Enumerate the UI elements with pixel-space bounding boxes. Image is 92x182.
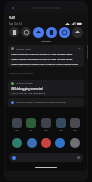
button[interactable]: Android System • Charging this device vi… [8,98,84,107]
staticText: App [29,129,33,132]
staticText: Google News [16,47,31,50]
staticText: 9:41 [9,16,16,20]
button[interactable]: App [56,118,66,128]
button[interactable]: Quick setting 2 [21,27,31,37]
button[interactable]: Android System [8,80,84,96]
staticText: Sat, Oct 14 [9,22,23,26]
button[interactable]: Dock app 4 [55,138,65,148]
button[interactable]: Quick setting 6 [72,27,83,38]
staticText: Android System [16,82,33,85]
button[interactable]: Google News [8,45,84,67]
staticText: App [59,129,63,132]
button[interactable]: App [70,118,80,128]
button[interactable] [9,153,83,162]
button[interactable]: Quick setting 5 [59,27,70,38]
button[interactable]: Quick setting 4 [46,27,57,38]
button[interactable]: Dock app 2 [27,138,37,148]
staticText: USB debugging connected [11,87,43,90]
staticText: News Nearby Advantive a total of 4026 un… [11,57,73,60]
button[interactable] [41,41,51,42]
staticText: Android System • Charging this device vi… [16,101,66,104]
button[interactable]: App [12,118,22,128]
button[interactable]: App [26,118,36,128]
staticText: News Germanum Telech has a total of 1082… [11,62,79,65]
button[interactable]: Quick setting 3 [33,27,44,38]
staticText: App [44,129,48,132]
button[interactable]: Dock app 3 [41,138,51,148]
staticText: App [15,129,19,132]
staticText: Tap to turn off USB debugging [11,91,46,94]
button[interactable]: Dock app 1 [12,138,22,148]
button[interactable]: Dock app 5 [70,138,80,148]
button[interactable]: Quick setting 1 [9,27,19,37]
button[interactable]: App [41,118,51,128]
staticText: SILENT NOTIFICATIONS [10,72,34,75]
staticText: App [73,129,77,132]
staticText: News Lubomin Ulta has a total of 1730 un… [11,52,73,55]
